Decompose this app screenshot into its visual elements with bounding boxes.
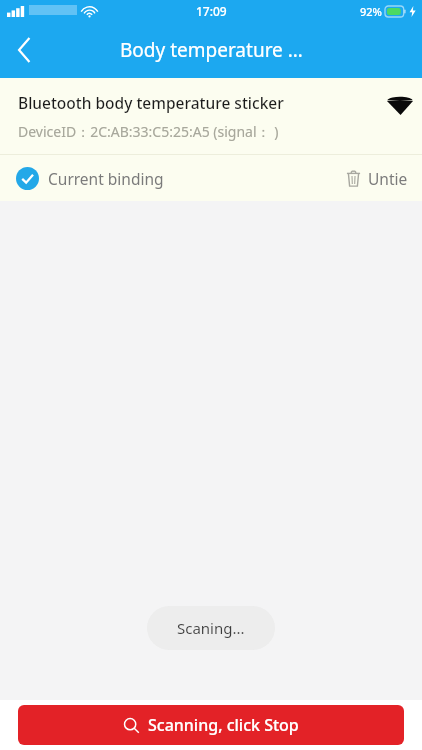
button[interactable]: Back bbox=[0, 26, 48, 74]
button[interactable]: Signal strength bbox=[378, 84, 422, 128]
staticText: 17:09 bbox=[196, 3, 227, 19]
staticText: Bluetooth body temperature sticker bbox=[18, 92, 284, 113]
staticText: Scanning, click Stop bbox=[148, 714, 299, 736]
button[interactable]: Bluetooth body temperature sticker bbox=[0, 78, 422, 154]
button[interactable]: Untie bbox=[336, 162, 422, 195]
staticText: DeviceID：2C:AB:33:C5:25:A5 (signal： ) bbox=[18, 122, 279, 141]
staticText: Untie bbox=[368, 168, 408, 189]
button[interactable]: Current binding bbox=[0, 161, 172, 196]
button[interactable]: Scaning... bbox=[147, 606, 275, 650]
staticText: Current binding bbox=[48, 168, 164, 189]
staticText: 92% bbox=[360, 4, 382, 19]
button[interactable]: Scanning, click Stop bbox=[18, 705, 404, 745]
staticText: Body temperature … bbox=[120, 37, 303, 63]
staticText: Scaning... bbox=[177, 618, 245, 638]
